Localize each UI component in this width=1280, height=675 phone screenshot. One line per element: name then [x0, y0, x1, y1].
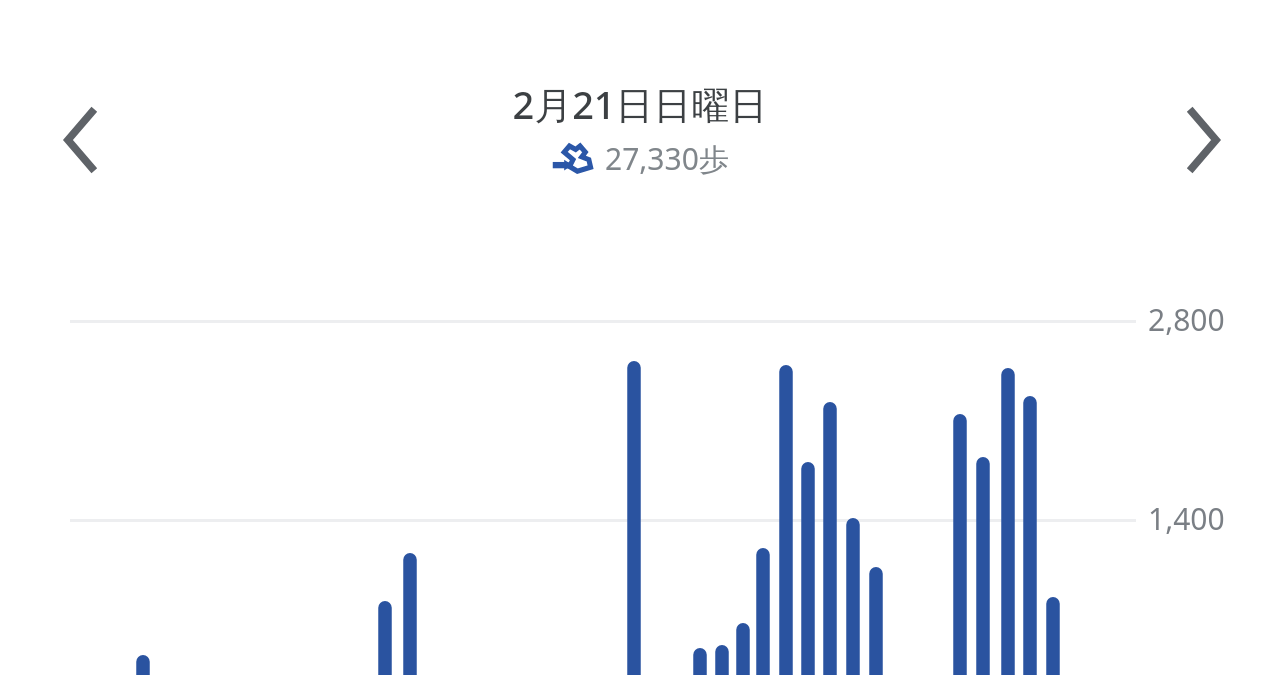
button[interactable]: Previous day [42, 98, 122, 182]
staticText: 2月21日日曜日 [512, 78, 768, 130]
staticText: 1,400 [1148, 498, 1225, 539]
button[interactable]: Next day [1162, 98, 1242, 182]
staticText: 27,330歩 [605, 138, 729, 179]
staticText: 2,800 [1148, 299, 1225, 340]
